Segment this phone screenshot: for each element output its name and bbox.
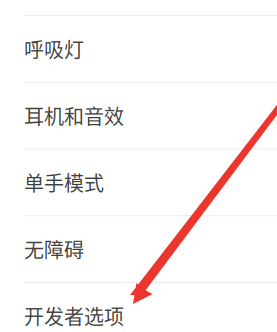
button[interactable]: 单手模式 <box>0 148 277 215</box>
button[interactable]: 无障碍 <box>0 215 277 282</box>
staticText: 耳机和音效 <box>24 101 124 130</box>
staticText: 无障碍 <box>24 235 84 264</box>
button[interactable]: 耳机和音效 <box>0 82 277 149</box>
button[interactable]: 开发者选项 <box>0 282 277 332</box>
staticText: 开发者选项 <box>24 301 124 330</box>
staticText: 呼吸灯 <box>24 34 84 63</box>
button[interactable]: 呼吸灯 <box>0 15 277 82</box>
staticText: 单手模式 <box>24 168 104 197</box>
